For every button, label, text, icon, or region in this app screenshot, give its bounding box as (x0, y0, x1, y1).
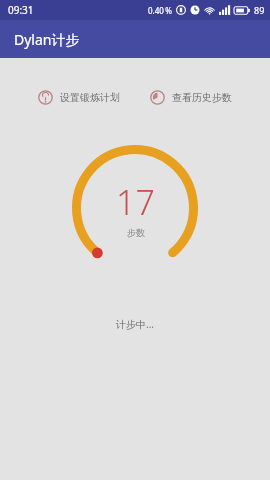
other: View history (150, 90, 165, 105)
other: Set training plan (38, 90, 53, 105)
button[interactable]: View history (146, 86, 236, 109)
staticText: Dylan计步 (14, 30, 80, 49)
staticText: 步数 (127, 227, 145, 238)
staticText: 89 (254, 4, 265, 16)
staticText: 设置锻炼计划 (60, 91, 120, 104)
staticText: 17 (116, 179, 155, 225)
staticText: 查看历史步数 (172, 91, 232, 104)
staticText: 0.40 % (148, 5, 172, 16)
staticText: 计步中... (0, 317, 270, 331)
button[interactable]: Set training plan (34, 86, 124, 109)
staticText: 09:31 (8, 3, 34, 17)
